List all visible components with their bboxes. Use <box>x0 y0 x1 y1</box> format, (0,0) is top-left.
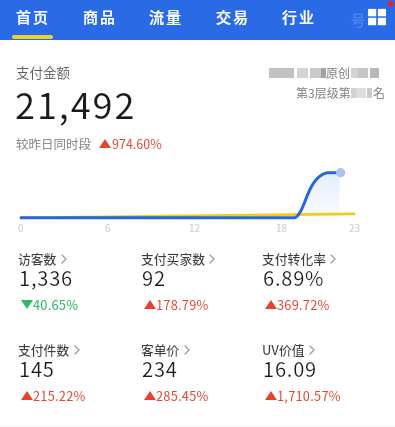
staticText: 客单价 <box>141 340 180 359</box>
staticText: 16.09 <box>263 354 317 383</box>
staticText: 234 <box>142 354 178 383</box>
button[interactable]: 交易 <box>213 0 252 34</box>
staticText: 40.65% <box>33 295 79 314</box>
staticText: 访客数 <box>18 249 57 268</box>
staticText: 支付转化率 <box>262 249 326 268</box>
staticText: UV价值 <box>262 340 305 359</box>
button[interactable]: 流量 <box>146 0 185 34</box>
staticText: 12 <box>189 220 201 234</box>
staticText: 145 <box>19 354 55 383</box>
button[interactable]: 支付买家数 <box>141 249 259 307</box>
button[interactable]: 访客数 <box>18 249 136 307</box>
button[interactable]: UV价值 <box>262 340 380 398</box>
staticText: 215.22% <box>33 386 86 405</box>
button[interactable]: All categories <box>362 0 395 34</box>
staticText: 原创 <box>326 64 351 81</box>
staticText: 369.72% <box>277 295 330 314</box>
button[interactable]: 客单价 <box>141 340 259 398</box>
staticText: 92 <box>142 263 166 292</box>
staticText: 支付件数 <box>18 340 70 359</box>
staticText: 商品 <box>83 6 117 28</box>
staticText: 18 <box>276 220 288 234</box>
staticText: 6.89% <box>263 263 325 292</box>
button[interactable]: 商品 <box>80 0 119 34</box>
button[interactable]: 首页 <box>13 0 52 34</box>
staticText: 首页 <box>16 6 50 28</box>
staticText: 1,336 <box>19 263 73 292</box>
staticText: 285.45% <box>156 386 209 405</box>
button[interactable]: 支付件数 <box>18 340 136 398</box>
staticText: 第3层级第 <box>296 84 351 101</box>
staticText: 号 <box>351 9 366 30</box>
staticText: 交易 <box>216 6 250 28</box>
staticText: 0 <box>18 220 24 234</box>
staticText: 6 <box>105 220 111 234</box>
staticText: 21,492 <box>15 77 137 129</box>
staticText: 974.60% <box>112 134 162 152</box>
button[interactable]: 行业 <box>279 0 318 34</box>
button[interactable]: 支付转化率 <box>262 249 380 307</box>
staticText: 支付买家数 <box>141 249 205 268</box>
staticText: 流量 <box>149 6 183 28</box>
staticText: 178.79% <box>156 295 209 314</box>
staticText: 行业 <box>282 6 316 28</box>
staticText: 名 <box>373 84 386 101</box>
staticText: 支付金额 <box>16 62 70 82</box>
staticText: 23 <box>349 220 361 234</box>
staticText: 较昨日同时段 <box>16 134 92 152</box>
staticText: 1,710.57% <box>277 386 341 405</box>
